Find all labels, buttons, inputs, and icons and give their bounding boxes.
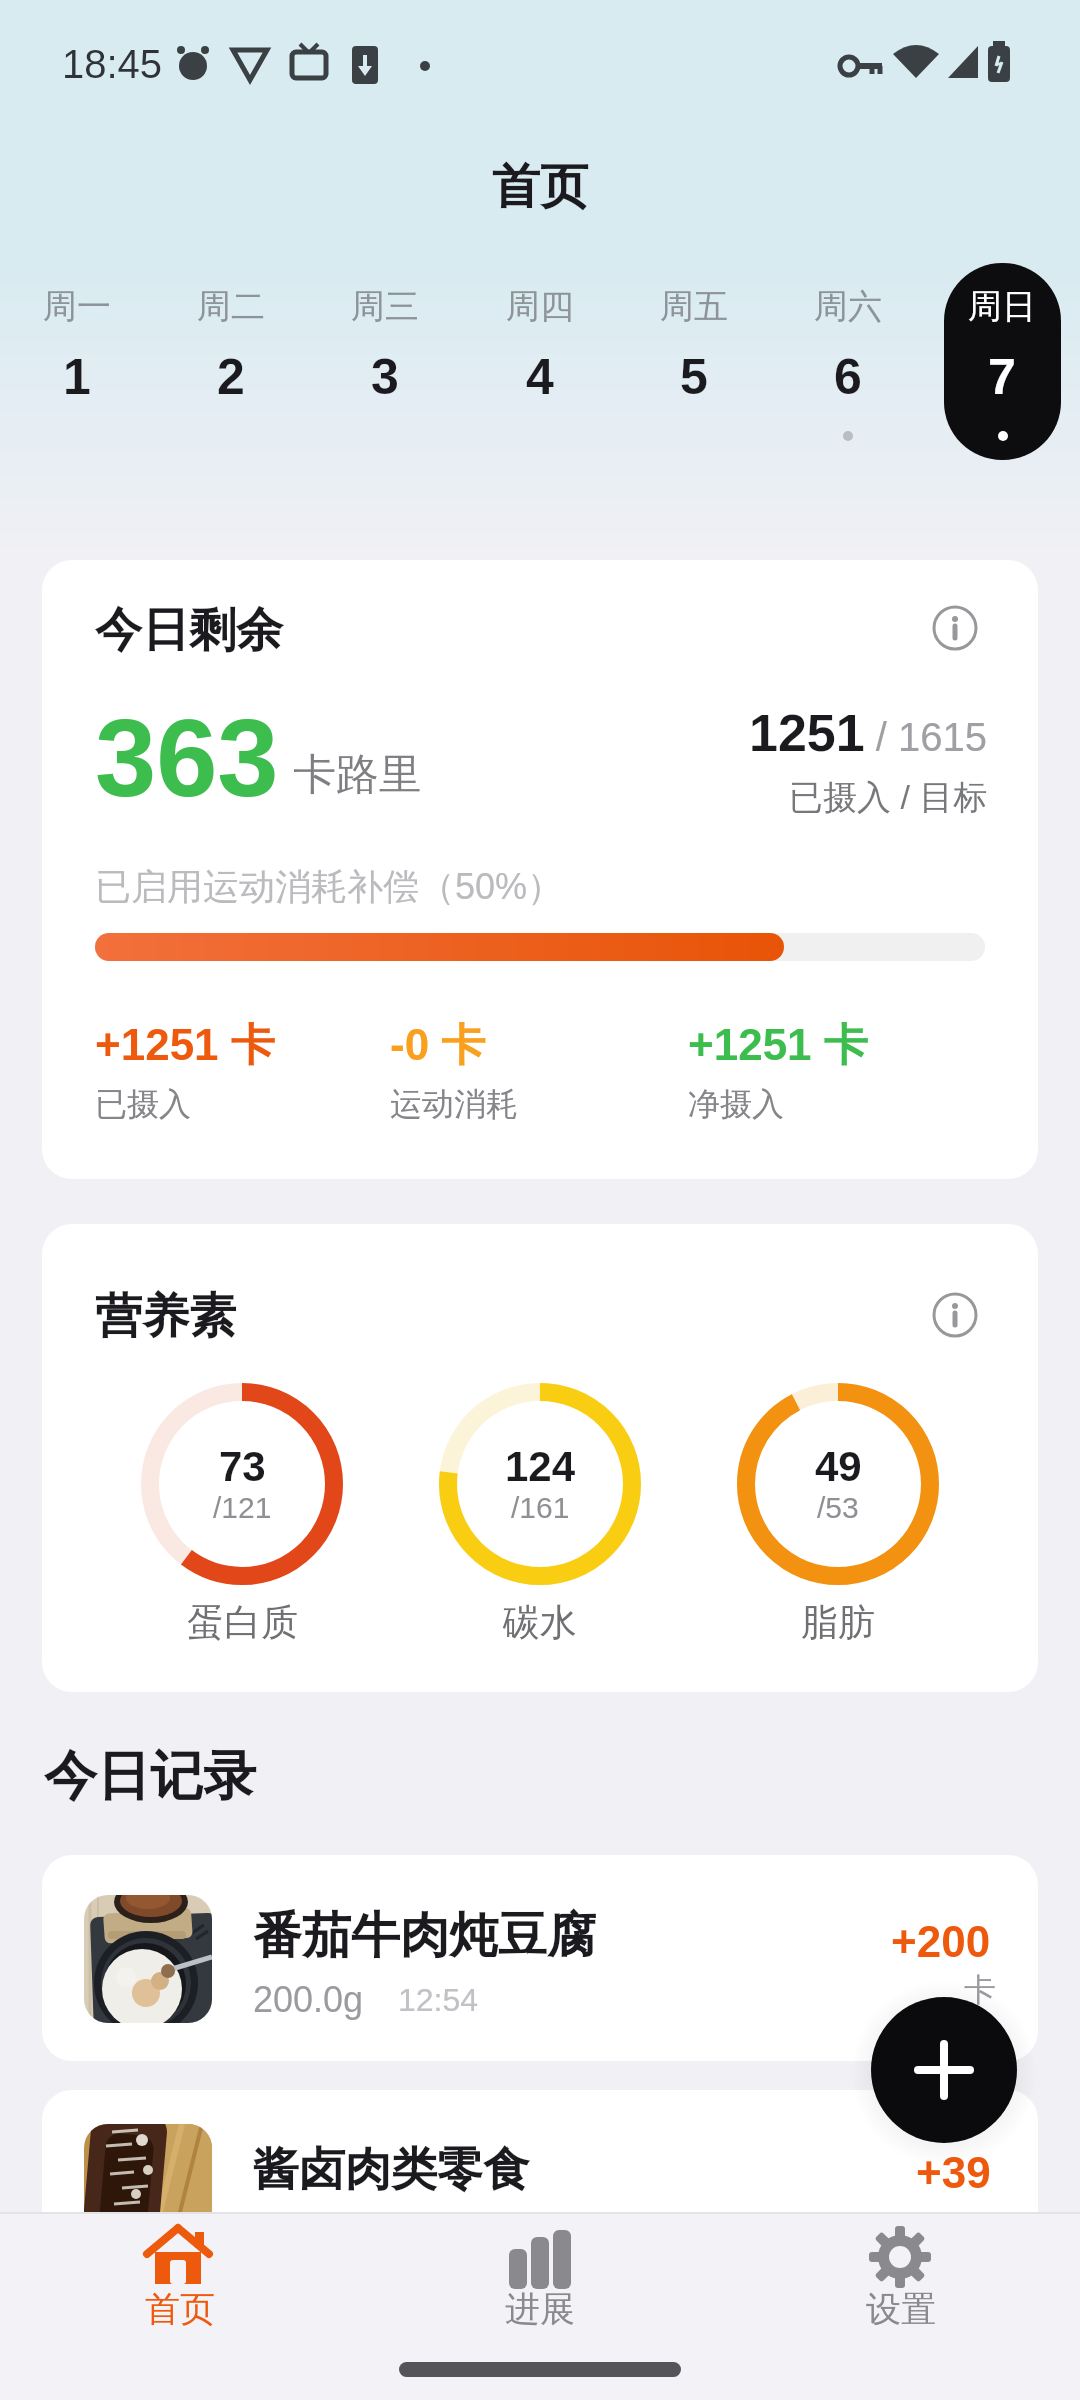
staticText: 18:45	[62, 42, 163, 87]
staticText: 酱卤肉类零食	[253, 2141, 529, 2199]
button[interactable]	[930, 603, 980, 653]
staticText: 番茄牛肉炖豆腐	[253, 1905, 596, 1967]
staticText: 进展	[505, 2287, 575, 2331]
button[interactable]	[460, 2212, 620, 2362]
staticText: 1	[63, 349, 91, 405]
staticText: 5	[680, 349, 708, 405]
staticText: 净摄入	[688, 1084, 784, 1124]
staticText: 已启用运动消耗补偿（50%）	[95, 864, 564, 909]
button[interactable]	[7, 262, 147, 462]
staticText: +200	[891, 1917, 991, 1966]
staticText: 2	[217, 349, 245, 405]
staticText: +39	[916, 2148, 991, 2197]
staticText: 已摄入	[95, 1084, 191, 1124]
staticText: 363	[95, 696, 279, 819]
staticText: 周五	[660, 285, 728, 328]
staticText: +1251 卡	[95, 1018, 275, 1073]
staticText: 碳水	[503, 1599, 577, 1646]
button[interactable]	[930, 1290, 980, 1340]
staticText: 脂肪	[801, 1599, 875, 1646]
staticText: 今日记录	[44, 1743, 256, 1810]
staticText: 设置	[866, 2287, 936, 2331]
staticText: 1251 / 1615	[749, 704, 988, 762]
staticText: 营养素	[95, 1287, 236, 1346]
staticText: 周一	[43, 285, 111, 328]
staticText: 周日	[968, 285, 1036, 328]
staticText: 首页	[145, 2287, 215, 2331]
staticText: 49	[815, 1443, 862, 1490]
staticText: /121	[213, 1491, 272, 1525]
staticText: 周六	[814, 285, 882, 328]
button[interactable]	[871, 1997, 1017, 2143]
staticText: 124	[505, 1443, 576, 1490]
staticText: 73	[219, 1443, 266, 1490]
button[interactable]	[470, 262, 610, 462]
staticText: 卡路里	[293, 748, 422, 802]
staticText: 7	[988, 349, 1016, 405]
button[interactable]	[778, 262, 918, 462]
button[interactable]	[624, 262, 764, 462]
staticText: 周三	[351, 285, 419, 328]
staticText: /53	[817, 1491, 859, 1525]
button[interactable]	[944, 263, 1061, 460]
button[interactable]	[42, 1855, 1038, 2061]
staticText: 运动消耗	[390, 1084, 518, 1124]
staticText: -0 卡	[390, 1018, 486, 1073]
button[interactable]	[315, 262, 455, 462]
staticText: 周二	[197, 285, 265, 328]
staticText: 6	[834, 349, 862, 405]
button[interactable]	[98, 2212, 258, 2362]
staticText: 4	[526, 349, 554, 405]
staticText: 已摄入 / 目标	[789, 776, 988, 819]
button[interactable]	[42, 2090, 1038, 2296]
staticText: +1251 卡	[688, 1018, 868, 1073]
staticText: 3	[371, 349, 399, 405]
button[interactable]	[161, 262, 301, 462]
staticText: /161	[511, 1491, 570, 1525]
staticText: 卡	[964, 1970, 996, 2010]
button[interactable]	[820, 2212, 980, 2362]
staticText: 蛋白质	[187, 1599, 298, 1646]
staticText: 今日剩余	[95, 601, 283, 660]
staticText: 首页	[492, 157, 588, 217]
staticText: 周四	[506, 285, 574, 328]
staticText: 12:54	[398, 1982, 479, 2018]
staticText: 200.0g	[253, 1979, 364, 2019]
